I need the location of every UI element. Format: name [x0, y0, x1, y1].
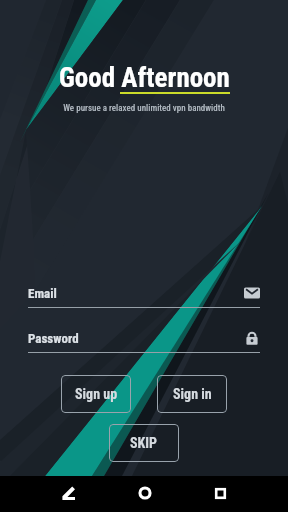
staticText: We pursue a relaxed unlimited vpn bandwi… — [63, 103, 225, 114]
button[interactable]: Sign in — [157, 375, 227, 413]
staticText: Good Afternoon — [59, 62, 230, 94]
button[interactable]: Sign up — [61, 375, 131, 413]
staticText: Sign in — [173, 386, 212, 402]
button[interactable]: Recents — [199, 476, 242, 512]
button[interactable]: Home — [123, 476, 166, 512]
button[interactable]: Back — [46, 476, 89, 512]
button[interactable]: SKIP — [109, 424, 179, 462]
button[interactable]: Password — [244, 330, 260, 346]
button[interactable]: Email — [244, 285, 260, 301]
staticText: Sign up — [75, 386, 118, 402]
staticText: SKIP — [130, 435, 158, 451]
staticText: Email — [28, 286, 244, 301]
staticText: Password — [28, 331, 244, 346]
